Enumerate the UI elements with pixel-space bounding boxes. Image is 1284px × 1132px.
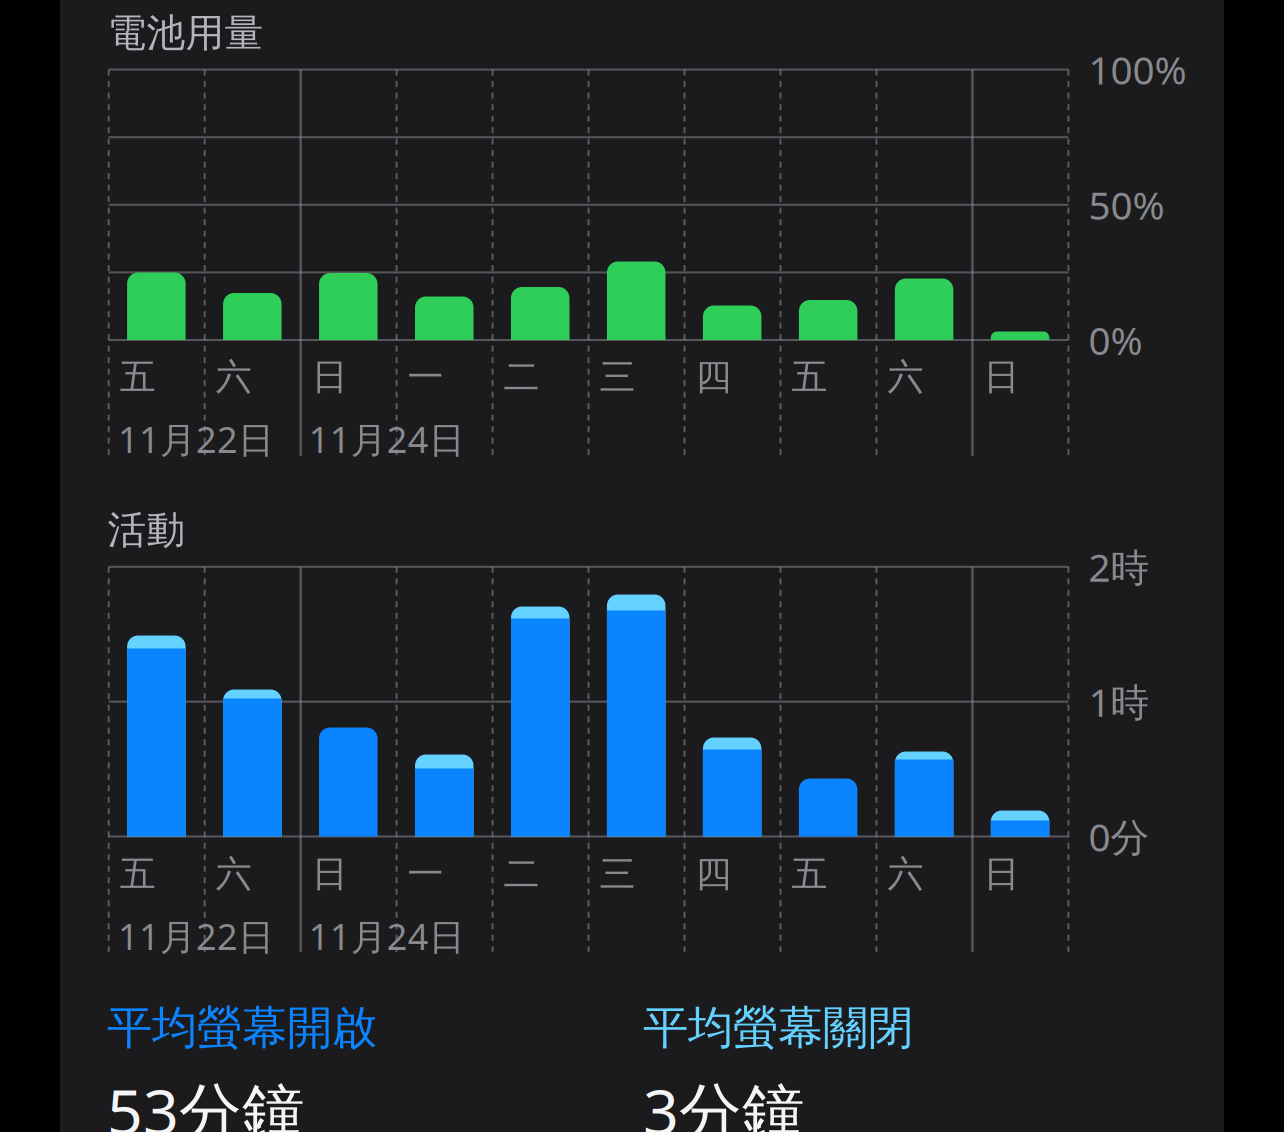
button[interactable]: 平均螢幕開啟 [107, 1000, 647, 1132]
staticText: 六 [887, 355, 923, 399]
staticText: 四 [695, 852, 731, 896]
staticText: 11月22日 [118, 912, 274, 960]
staticText: 五 [120, 852, 156, 896]
staticText: 活動 [107, 506, 185, 554]
staticText: 日 [983, 355, 1019, 399]
staticText: 六 [216, 355, 252, 399]
staticText: 日 [312, 852, 348, 896]
staticText: 平均螢幕開啟 [107, 1000, 377, 1056]
staticText: 六 [887, 852, 923, 896]
staticText: 五 [791, 355, 827, 399]
staticText: 六 [216, 852, 252, 896]
staticText: 日 [312, 355, 348, 399]
staticText: 五 [120, 355, 156, 399]
staticText: 11月22日 [118, 415, 274, 463]
staticText: 電池用量 [107, 9, 263, 57]
button[interactable]: 平均螢幕關閉 [643, 1000, 1183, 1132]
staticText: 二 [504, 355, 540, 399]
staticText: 三 [600, 355, 636, 399]
staticText: 四 [695, 355, 731, 399]
staticText: 日 [983, 852, 1019, 896]
staticText: 平均螢幕關閉 [643, 1000, 913, 1056]
staticText: 2時 [1088, 541, 1149, 592]
staticText: 11月24日 [309, 415, 465, 463]
staticText: 53分鐘 [107, 1069, 305, 1132]
staticText: 0% [1088, 314, 1142, 366]
staticText: 1時 [1088, 676, 1149, 727]
staticText: 三 [600, 852, 636, 896]
staticText: 100% [1088, 44, 1186, 95]
staticText: 0分 [1088, 811, 1149, 862]
staticText: 11月24日 [309, 912, 465, 960]
staticText: 3分鐘 [643, 1069, 805, 1132]
staticText: 一 [408, 355, 444, 399]
staticText: 一 [408, 852, 444, 896]
staticText: 五 [791, 852, 827, 896]
staticText: 二 [504, 852, 540, 896]
staticText: 50% [1088, 179, 1164, 230]
